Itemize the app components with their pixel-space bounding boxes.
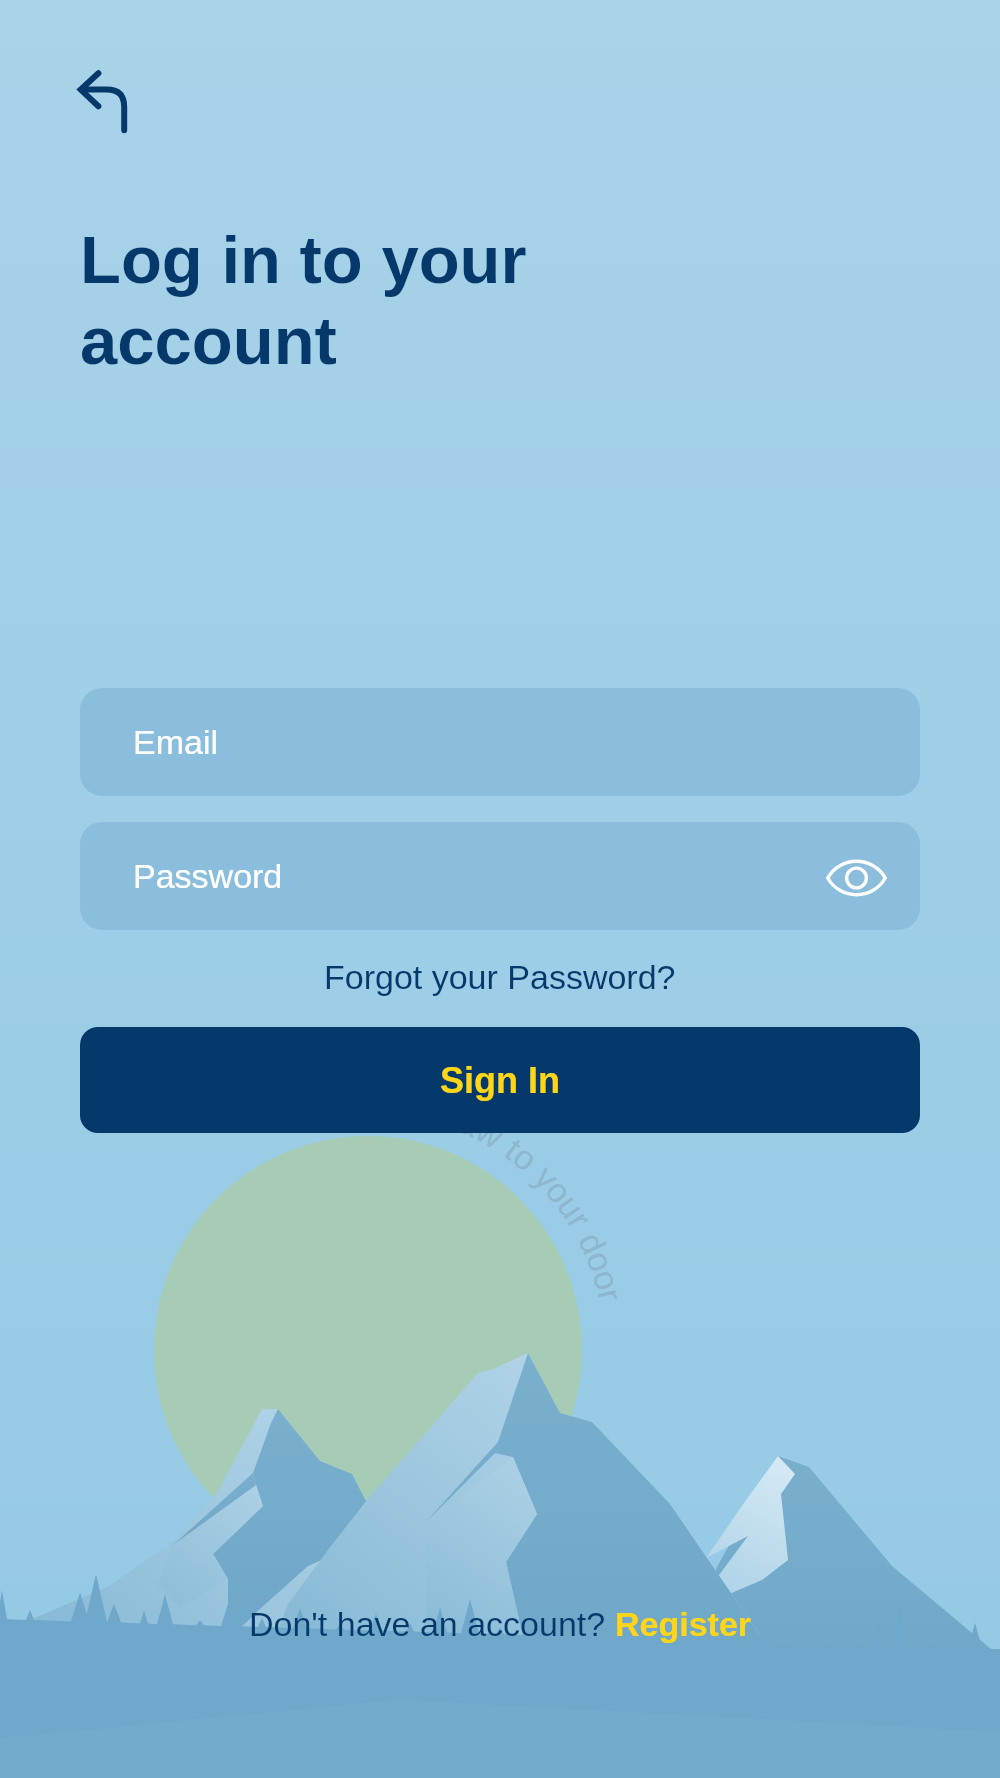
staticText: Log in to your account [80, 222, 527, 378]
staticText: Sign In [440, 1060, 560, 1100]
staticText: Don't have an account? [249, 1605, 615, 1643]
button[interactable]: Back [50, 44, 146, 140]
button[interactable]: Show password [810, 837, 902, 915]
staticText: Password [133, 857, 283, 895]
staticText: Register [615, 1605, 752, 1643]
button[interactable]: Email [80, 688, 920, 796]
button[interactable]: Register [615, 1605, 752, 1643]
staticText: Forgot your Password? [324, 958, 676, 996]
button[interactable]: Forgot your Password? [0, 930, 1000, 1027]
button[interactable]: Sign In [80, 1027, 920, 1133]
staticText: Email [133, 723, 219, 761]
button[interactable]: Password [80, 822, 920, 930]
